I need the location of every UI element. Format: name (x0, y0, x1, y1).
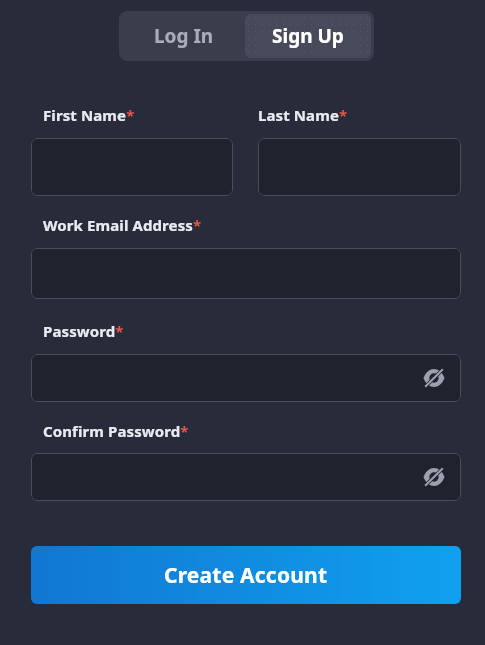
button[interactable]: First Name (31, 138, 233, 196)
button[interactable]: Log In (122, 14, 245, 58)
button[interactable]: Show password (421, 365, 447, 391)
staticText: Create Account (164, 561, 328, 590)
button[interactable]: Work Email Address (31, 248, 461, 299)
staticText: Log In (154, 23, 214, 49)
staticText: First Name* (43, 105, 258, 125)
staticText: Work Email Address* (43, 215, 202, 235)
button[interactable]: Last Name (258, 138, 461, 196)
button[interactable]: Sign Up (245, 14, 371, 58)
button[interactable]: Password (31, 354, 461, 402)
staticText: Confirm Password* (43, 421, 189, 441)
staticText: Password* (43, 321, 124, 341)
staticText: Last Name* (258, 105, 348, 125)
button[interactable]: Show password (421, 464, 447, 490)
button[interactable]: Create Account (31, 546, 461, 604)
button[interactable]: Confirm Password (31, 453, 461, 501)
staticText: Sign Up (272, 23, 344, 49)
